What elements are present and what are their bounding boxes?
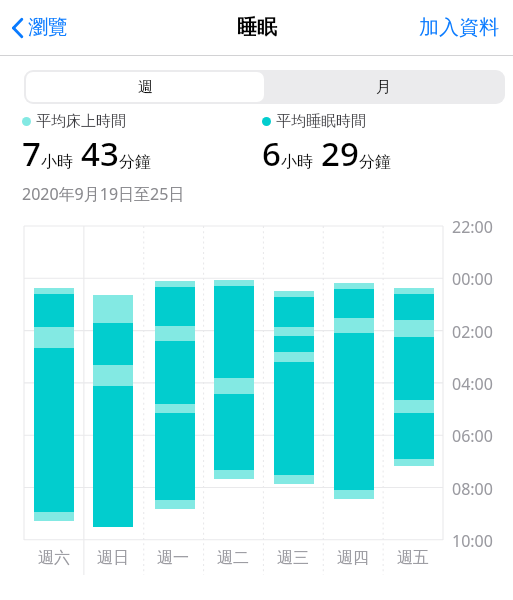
staticText: 7 bbox=[22, 131, 41, 176]
staticText: 週五 bbox=[397, 548, 429, 568]
staticText: 04:00 bbox=[452, 373, 493, 395]
staticText: 02:00 bbox=[452, 321, 493, 343]
staticText: 月 bbox=[376, 78, 391, 97]
staticText: 22:00 bbox=[452, 216, 493, 238]
staticText: 瀏覽 bbox=[28, 15, 68, 40]
staticText: 小時 bbox=[41, 152, 73, 172]
staticText: 43 bbox=[81, 131, 119, 176]
staticText: 6 bbox=[262, 131, 281, 176]
staticText: 加入資料 bbox=[419, 15, 499, 40]
staticText: 00:00 bbox=[452, 268, 493, 290]
staticText: 小時 bbox=[281, 152, 313, 172]
staticText: 週二 bbox=[217, 548, 249, 568]
button[interactable]: 加入資料 bbox=[405, 0, 513, 55]
staticText: 週 bbox=[138, 78, 153, 97]
staticText: 分鐘 bbox=[359, 152, 391, 172]
staticText: 週日 bbox=[97, 548, 129, 568]
staticText: 08:00 bbox=[452, 478, 493, 500]
button[interactable]: 月 bbox=[264, 72, 503, 102]
staticText: 06:00 bbox=[452, 425, 493, 447]
button[interactable]: 週 bbox=[26, 72, 264, 102]
staticText: 平均床上時間 bbox=[36, 112, 126, 131]
staticText: 週一 bbox=[157, 548, 189, 568]
staticText: 29 bbox=[321, 131, 359, 176]
staticText: 週三 bbox=[277, 548, 309, 568]
staticText: 睡眠 bbox=[237, 15, 277, 40]
button[interactable]: 瀏覽 bbox=[12, 0, 78, 55]
staticText: 週六 bbox=[38, 548, 70, 568]
staticText: 10:00 bbox=[452, 530, 493, 552]
staticText: 分鐘 bbox=[119, 152, 151, 172]
staticText: 週四 bbox=[337, 548, 369, 568]
staticText: 平均睡眠時間 bbox=[276, 112, 366, 131]
staticText: 2020年9月19日至25日 bbox=[22, 183, 185, 205]
